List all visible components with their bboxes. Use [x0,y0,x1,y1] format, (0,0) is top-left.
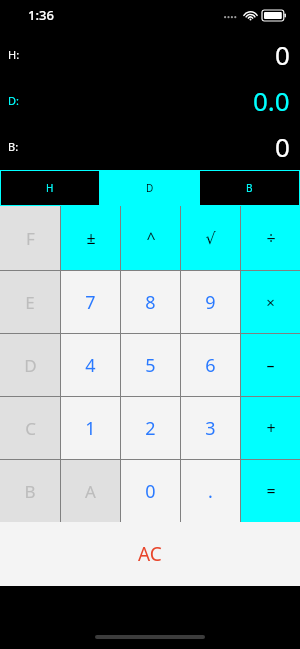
button[interactable]: 8 [121,271,180,333]
staticText: 1 [85,416,96,441]
staticText: D [24,354,37,377]
staticText: √ [205,229,216,248]
button[interactable]: AC [0,522,300,586]
staticText: B [246,181,253,195]
staticText: – [266,354,275,376]
staticText: ÷ [266,227,276,249]
staticText: 0 [275,129,290,164]
staticText: 8 [145,290,156,315]
button[interactable]: 3 [181,397,240,459]
button[interactable]: D [100,171,199,205]
staticText: 5 [145,353,156,378]
staticText: 9 [205,290,216,315]
staticText: D: [8,93,19,108]
button[interactable]: Square root [181,206,240,270]
button[interactable]: 5 [121,334,180,396]
staticText: ^ [146,227,156,249]
staticText: 0 [275,37,290,72]
button[interactable]: Minus [241,334,300,396]
button[interactable]: 0 [121,460,180,522]
button[interactable]: 2 [121,397,180,459]
button[interactable]: . [181,460,240,522]
staticText: H: [8,47,20,62]
staticText: E [25,291,35,314]
staticText: + [266,417,276,439]
staticText: 6 [205,353,216,378]
staticText: B [24,480,36,503]
staticText: D [146,181,154,195]
staticText: H [46,181,54,195]
staticText: = [266,480,276,502]
staticText: 2 [145,416,156,441]
staticText: F [26,227,35,250]
staticText: 3 [205,416,216,441]
button[interactable]: 7 [61,271,120,333]
button[interactable]: 4 [61,334,120,396]
staticText: AC [138,541,162,567]
staticText: 7 [85,290,96,315]
staticText: 0 [145,479,156,504]
button[interactable]: 6 [181,334,240,396]
staticText: C [25,417,36,440]
staticText: B: [8,139,19,154]
staticText: ± [86,227,96,249]
button[interactable]: H [1,171,99,205]
button[interactable]: Plus [241,397,300,459]
staticText: A [85,480,96,503]
button[interactable]: Divide [241,206,300,270]
staticText: 0.0 [253,83,290,118]
button[interactable]: Plus minus [61,206,120,270]
staticText: 1:36 [28,6,54,24]
button[interactable]: 1 [61,397,120,459]
button[interactable]: 9 [181,271,240,333]
button[interactable]: Power [121,206,180,270]
button[interactable]: Equals [241,460,300,522]
staticText: 4 [85,353,96,378]
staticText: × [266,292,275,312]
button[interactable]: B [200,171,299,205]
button[interactable]: Multiply [241,271,300,333]
staticText: . [208,479,213,504]
